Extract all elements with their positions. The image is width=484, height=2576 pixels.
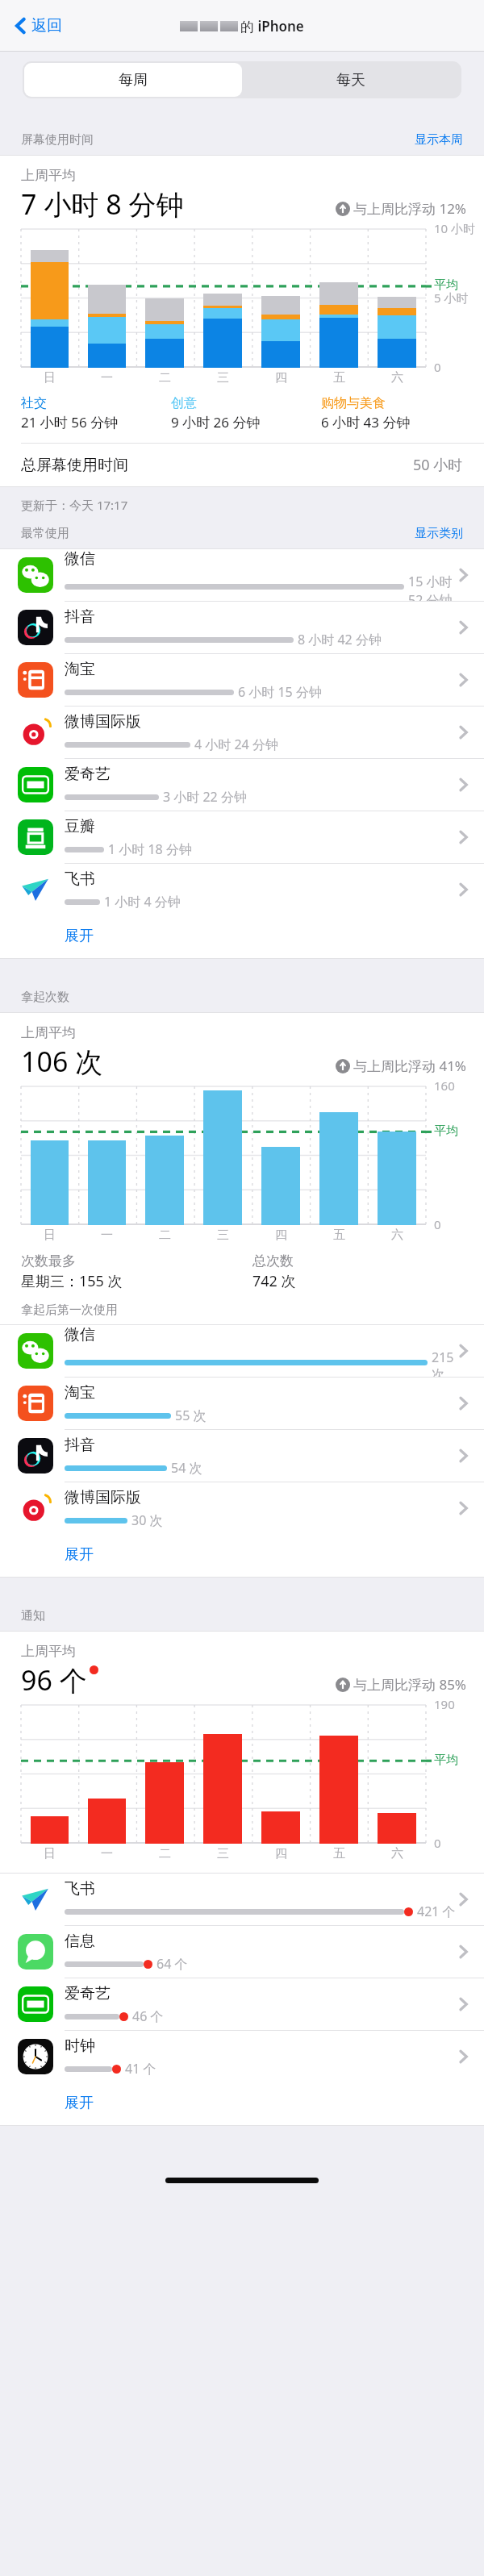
button[interactable]: 展开: [0, 2082, 484, 2125]
staticText: 创意: [171, 395, 197, 411]
staticText: 的 iPhone: [240, 17, 304, 35]
staticText: 54 次: [171, 1459, 202, 1477]
staticText: 421 个: [417, 1903, 456, 1920]
staticText: 四: [275, 1228, 287, 1243]
button[interactable]: 抖音: [0, 1430, 484, 1482]
staticText: 六: [391, 1846, 403, 1861]
staticText: 41 个: [125, 2060, 156, 2078]
staticText: 展开: [65, 2094, 94, 2112]
button[interactable]: 飞书: [0, 1874, 484, 1926]
staticText: 六: [391, 1228, 403, 1243]
staticText: 6 小时 43 分钟: [321, 413, 411, 431]
other: 详情: [459, 724, 468, 740]
staticText: 0: [434, 1216, 441, 1232]
staticText: 微博国际版: [65, 712, 141, 732]
staticText: 显示类别: [415, 526, 463, 541]
staticText: 上周平均: [21, 1024, 76, 1041]
other: 详情: [459, 1891, 468, 1907]
staticText: 160: [434, 1078, 455, 1094]
staticText: 爱奇艺: [65, 765, 111, 784]
staticText: 三: [217, 370, 229, 386]
staticText: 4 小时 24 分钟: [194, 736, 278, 753]
button[interactable]: 淘宝: [0, 654, 484, 707]
staticText: 展开: [65, 1545, 94, 1564]
button[interactable]: 返回: [10, 11, 67, 40]
staticText: 6 小时 15 分钟: [238, 683, 322, 701]
staticText: 抖音: [65, 1436, 95, 1455]
staticText: 8 小时 42 分钟: [298, 631, 382, 648]
staticText: 五: [333, 1846, 345, 1861]
button[interactable]: 显示类别: [415, 526, 463, 541]
other: 详情: [459, 1500, 468, 1516]
staticText: 10 小时: [434, 220, 476, 236]
other: 详情: [459, 1395, 468, 1411]
button[interactable]: 展开: [0, 915, 484, 958]
staticText: 上周平均: [21, 1643, 76, 1660]
staticText: 二: [159, 1846, 171, 1861]
button[interactable]: 微信: [0, 1325, 484, 1378]
other: 详情: [459, 567, 468, 583]
staticText: 社交: [21, 395, 47, 411]
staticText: 46 个: [132, 2007, 164, 2025]
button[interactable]: 展开: [0, 1534, 484, 1577]
button[interactable]: 微信: [0, 549, 484, 602]
other: 详情: [459, 1448, 468, 1464]
staticText: 平均: [434, 277, 458, 293]
staticText: 四: [275, 1846, 287, 1861]
staticText: 四: [275, 370, 287, 386]
staticText: 215 次: [432, 1348, 459, 1377]
button[interactable]: 豆瓣: [0, 811, 484, 864]
staticText: 每周: [119, 71, 148, 90]
staticText: 拿起后第一次使用: [21, 1303, 118, 1318]
button[interactable]: 微博国际版: [0, 707, 484, 759]
staticText: 豆瓣: [65, 817, 95, 836]
staticText: 屏幕使用时间: [21, 132, 415, 148]
button[interactable]: 时钟: [0, 2031, 484, 2082]
button[interactable]: 抖音: [0, 602, 484, 654]
staticText: 一: [101, 1228, 113, 1243]
staticText: 一: [101, 370, 113, 386]
button[interactable]: 总屏幕使用时间: [0, 444, 484, 486]
staticText: 通知: [21, 1608, 463, 1624]
staticText: 总屏幕使用时间: [21, 456, 413, 475]
staticText: 106 次: [21, 1043, 103, 1080]
staticText: 二: [159, 1228, 171, 1243]
button[interactable]: 信息: [0, 1926, 484, 1978]
staticText: 更新于：今天 17:17: [21, 497, 128, 513]
staticText: 每天: [336, 71, 365, 90]
staticText: 与上周比浮动 12%: [353, 199, 466, 218]
staticText: 爱奇艺: [65, 1984, 111, 2003]
staticText: 次数最多: [21, 1253, 76, 1269]
staticText: 1 小时 4 分钟: [104, 893, 181, 911]
button[interactable]: 爱奇艺: [0, 759, 484, 811]
other: 详情: [459, 882, 468, 898]
staticText: 显示本周: [415, 132, 463, 148]
staticText: 7 小时 8 分钟: [21, 185, 184, 223]
button[interactable]: 显示本周: [415, 132, 463, 148]
staticText: 五: [333, 1228, 345, 1243]
button[interactable]: 飞书: [0, 864, 484, 915]
staticText: 日: [44, 1846, 56, 1861]
other: 详情: [459, 1996, 468, 2012]
other: 详情: [459, 829, 468, 845]
button[interactable]: 淘宝: [0, 1378, 484, 1430]
button[interactable]: 爱奇艺: [0, 1978, 484, 2031]
staticText: 与上周比浮动 41%: [353, 1057, 466, 1075]
button[interactable]: 每天: [242, 63, 460, 97]
staticText: 六: [391, 370, 403, 386]
staticText: 拿起次数: [21, 990, 463, 1005]
staticText: 购物与美食: [321, 395, 386, 411]
staticText: 微信: [65, 1325, 95, 1344]
staticText: 15 小时 52 分钟: [408, 573, 459, 601]
other: 详情: [459, 777, 468, 793]
staticText: 96 个: [21, 1661, 87, 1699]
staticText: 190: [434, 1696, 455, 1712]
staticText: 总次数: [252, 1253, 294, 1269]
staticText: 日: [44, 1228, 56, 1243]
button[interactable]: 微博国际版: [0, 1482, 484, 1534]
staticText: 三: [217, 1228, 229, 1243]
button[interactable]: 每周: [24, 63, 242, 97]
staticText: 一: [101, 1846, 113, 1861]
staticText: 日: [44, 370, 56, 386]
staticText: 64 个: [156, 1955, 188, 1973]
